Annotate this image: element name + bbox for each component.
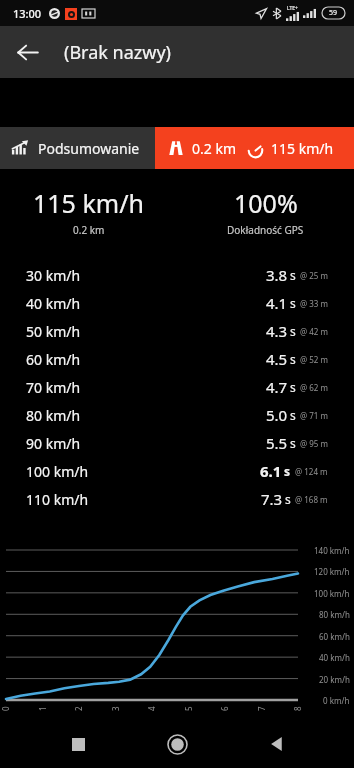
staticText: s	[290, 407, 296, 423]
staticText: 4.3	[266, 321, 288, 341]
button[interactable]: 110 km/h	[0, 485, 354, 513]
staticText: 7	[256, 706, 267, 711]
staticText: 0.2 km	[192, 139, 236, 158]
staticText: 8	[292, 706, 303, 711]
staticText: 100 km/h	[314, 588, 350, 599]
staticText: @ 25 m	[300, 270, 328, 281]
button[interactable]: Home	[155, 722, 199, 766]
staticText: (Brak nazwy)	[64, 40, 171, 65]
button[interactable]: 0.2 km	[155, 127, 354, 169]
staticText: 50 km/h	[26, 322, 81, 341]
staticText: 4	[146, 706, 157, 711]
staticText: 0	[0, 706, 11, 711]
staticText: 3	[110, 706, 121, 711]
button[interactable]: Podsumowanie	[0, 127, 155, 169]
staticText: 7.3	[261, 489, 283, 509]
staticText: @ 33 m	[300, 298, 328, 309]
button[interactable]: 50 km/h	[0, 317, 354, 345]
staticText: Podsumowanie	[38, 139, 140, 158]
button[interactable]: Back	[255, 722, 299, 766]
staticText: 4.1	[266, 293, 288, 313]
staticText: 0 km/h	[323, 695, 350, 706]
staticText: 100 km/h	[26, 462, 89, 481]
staticText: 13:00	[13, 6, 42, 21]
staticText: 60 km/h	[26, 350, 81, 369]
staticText: 2	[73, 706, 84, 711]
staticText: 5.0	[266, 405, 288, 425]
staticText: 70 km/h	[26, 378, 81, 397]
button[interactable]: Recent apps	[56, 722, 100, 766]
staticText: 80 km/h	[319, 609, 350, 620]
staticText: 60 km/h	[319, 631, 350, 642]
staticText: 4.5	[266, 349, 288, 369]
staticText: 80 km/h	[26, 406, 81, 425]
staticText: @ 62 m	[300, 382, 328, 393]
staticText: 140 km/h	[314, 545, 350, 556]
staticText: 4.7	[266, 377, 288, 397]
button[interactable]: 80 km/h	[0, 401, 354, 429]
staticText: s	[290, 267, 296, 283]
staticText: @ 71 m	[300, 410, 328, 421]
button[interactable]: 100 km/h	[0, 457, 354, 485]
staticText: @ 95 m	[300, 438, 328, 449]
button[interactable]: 70 km/h	[0, 373, 354, 401]
staticText: LTE+	[287, 5, 298, 12]
staticText: 3.8	[266, 265, 288, 285]
button[interactable]: 60 km/h	[0, 345, 354, 373]
staticText: 90 km/h	[26, 434, 81, 453]
staticText: s	[290, 323, 296, 339]
staticText: s	[290, 435, 296, 451]
staticText: @ 52 m	[300, 354, 328, 365]
staticText: s	[285, 491, 291, 507]
staticText: 30 km/h	[26, 266, 81, 285]
staticText: @ 124 m	[295, 466, 328, 477]
staticText: 120 km/h	[314, 566, 350, 577]
button[interactable]: 40 km/h	[0, 289, 354, 317]
staticText: 40 km/h	[26, 294, 81, 313]
button[interactable]: 30 km/h	[0, 261, 354, 289]
staticText: 110 km/h	[26, 490, 89, 509]
staticText: 0.2 km	[73, 223, 105, 237]
staticText: s	[290, 295, 296, 311]
staticText: @ 42 m	[300, 326, 328, 337]
staticText: 100%	[234, 186, 298, 220]
staticText: 20 km/h	[319, 674, 350, 685]
staticText: @ 168 m	[295, 494, 328, 505]
staticText: Dokładność GPS	[227, 223, 304, 237]
staticText: s	[284, 463, 291, 479]
staticText: 115 km/h	[271, 139, 334, 158]
staticText: 1	[37, 706, 48, 711]
staticText: 6	[219, 706, 230, 711]
staticText: 115 km/h	[33, 186, 144, 220]
staticText: s	[290, 379, 296, 395]
button[interactable]: Back	[6, 31, 48, 73]
staticText: s	[290, 351, 296, 367]
staticText: 6.1	[260, 461, 282, 481]
staticText: 5.5	[266, 433, 288, 453]
button[interactable]: 90 km/h	[0, 429, 354, 457]
staticText: 40 km/h	[319, 652, 350, 663]
staticText: 59	[329, 8, 338, 18]
staticText: 5	[183, 706, 194, 711]
